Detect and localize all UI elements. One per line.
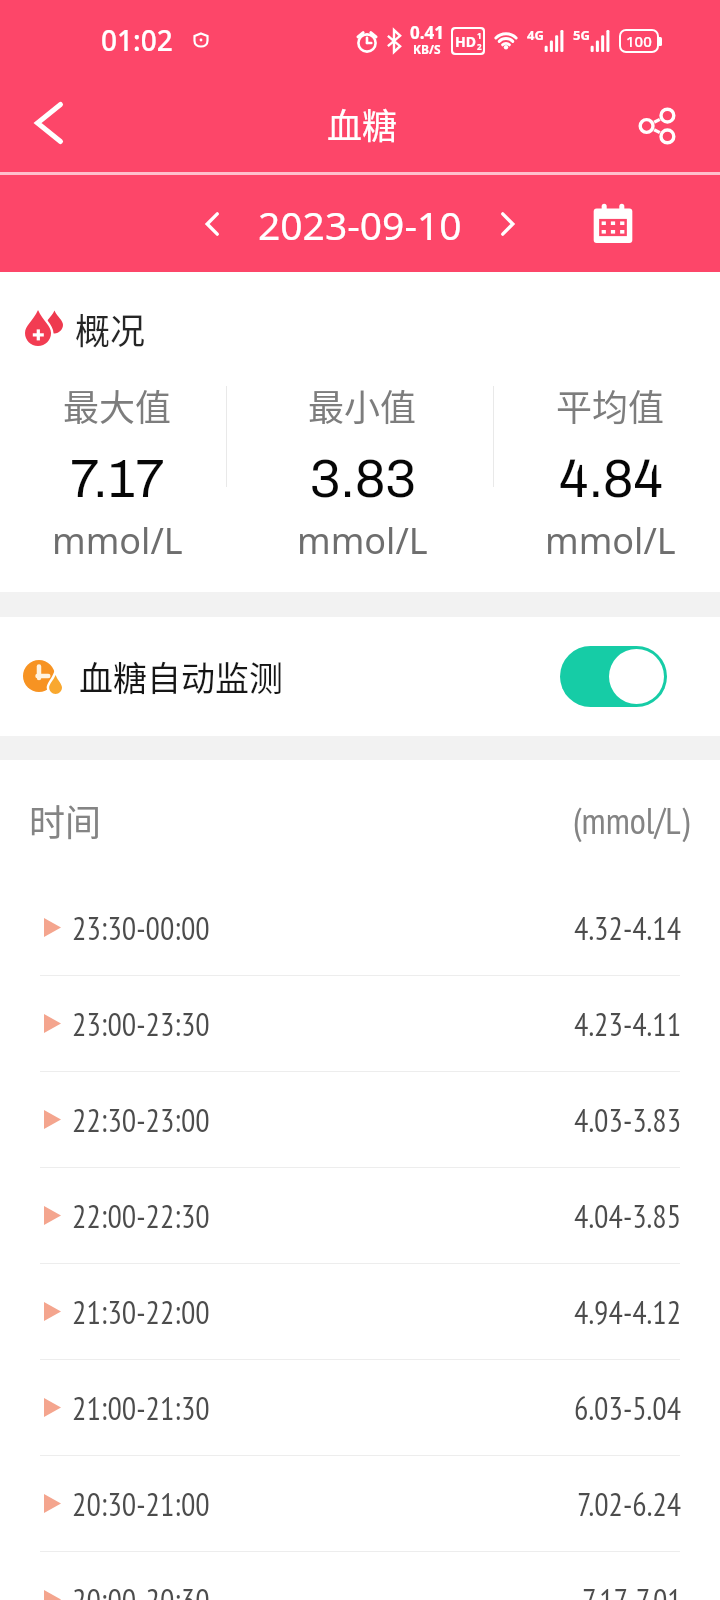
staticText: 最小值 — [308, 379, 417, 431]
staticText: 22:00-22:30 — [72, 1195, 210, 1236]
staticText: 平均值 — [556, 379, 665, 431]
staticText: mmol/L — [297, 516, 428, 565]
button[interactable]: 血糖自动监测 — [0, 617, 720, 736]
button[interactable]: 20:30-21:00 — [0, 1456, 720, 1551]
staticText: 21:00-21:30 — [72, 1387, 210, 1428]
staticText: 4.94-4.12 — [574, 1291, 682, 1332]
staticText: 3.83 — [310, 450, 416, 508]
button[interactable]: 20:00-20:30 — [0, 1552, 720, 1600]
button[interactable]: 21:30-22:00 — [0, 1264, 720, 1359]
staticText: 4.23-4.11 — [574, 1003, 682, 1044]
staticText: 100 — [626, 31, 652, 51]
staticText: 4.84 — [559, 450, 663, 508]
button[interactable]: Back — [21, 95, 77, 151]
staticText: 01:02 — [101, 21, 173, 59]
staticText: 2 — [477, 41, 482, 52]
staticText: mmol/L — [545, 516, 676, 565]
staticText: 7.17-7.01 — [582, 1579, 682, 1600]
staticText: 4.04-3.85 — [574, 1195, 682, 1236]
staticText: 23:00-23:30 — [72, 1003, 210, 1044]
staticText: 血糖自动监测 — [79, 652, 283, 701]
staticText: 7.17 — [70, 450, 165, 508]
staticText: 4.32-4.14 — [574, 907, 682, 948]
button[interactable]: 22:30-23:00 — [0, 1072, 720, 1167]
button[interactable]: Auto monitoring toggle — [560, 646, 667, 707]
button[interactable]: 22:00-22:30 — [0, 1168, 720, 1263]
staticText: 7.02-6.24 — [577, 1483, 682, 1524]
button[interactable]: 21:00-21:30 — [0, 1360, 720, 1455]
staticText: 1 — [477, 30, 482, 41]
staticText: 21:30-22:00 — [72, 1291, 210, 1332]
staticText: 2023-09-10 — [258, 198, 462, 251]
staticText: 6.03-5.04 — [574, 1387, 682, 1428]
staticText: 22:30-23:00 — [72, 1099, 210, 1140]
staticText: 最大值 — [63, 379, 172, 431]
staticText: 23:30-00:00 — [72, 907, 210, 948]
button[interactable]: Next day — [480, 196, 536, 252]
staticText: 4.03-3.83 — [574, 1099, 682, 1140]
staticText: 5G — [573, 26, 590, 44]
staticText: mmol/L — [52, 516, 183, 565]
staticText: 概况 — [75, 303, 146, 354]
staticText: HD — [455, 32, 476, 51]
button[interactable]: 23:00-23:30 — [0, 976, 720, 1071]
button[interactable]: Previous day — [184, 196, 240, 252]
button[interactable]: Share — [629, 98, 685, 154]
staticText: 时间 — [29, 794, 102, 846]
staticText: 0.41 — [410, 21, 444, 44]
staticText: 20:00-20:30 — [72, 1579, 210, 1600]
staticText: 20:30-21:00 — [72, 1483, 210, 1524]
staticText: 4G — [527, 26, 544, 44]
button[interactable]: Pick date — [584, 195, 642, 253]
staticText: KB/S — [413, 41, 441, 57]
button[interactable]: 23:30-00:00 — [0, 880, 720, 975]
staticText: 血糖 — [327, 98, 398, 149]
staticText: (mmol/L) — [573, 796, 690, 844]
